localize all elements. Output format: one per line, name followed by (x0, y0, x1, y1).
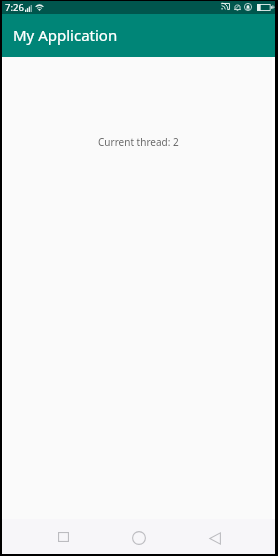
staticText: 7:26 (5, 1, 24, 14)
staticText: My Application (13, 25, 118, 45)
button[interactable]: Home (126, 525, 152, 551)
staticText: Current thread: 2 (98, 135, 179, 149)
button[interactable]: Recents (50, 524, 76, 550)
button[interactable]: Back (202, 525, 228, 551)
